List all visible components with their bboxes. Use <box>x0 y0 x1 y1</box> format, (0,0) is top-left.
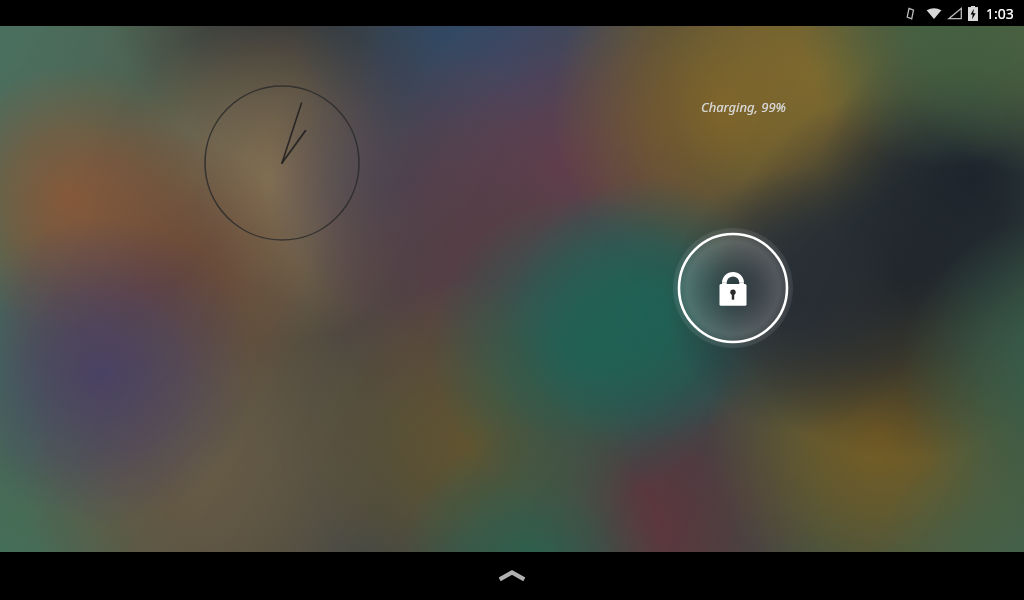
button[interactable] <box>204 85 360 241</box>
staticText: 1:03 <box>986 4 1014 23</box>
button[interactable]: Unlock, swipe up <box>484 554 540 598</box>
button[interactable]: Unlock <box>673 228 793 348</box>
staticText: Charging, 99% <box>701 98 786 116</box>
